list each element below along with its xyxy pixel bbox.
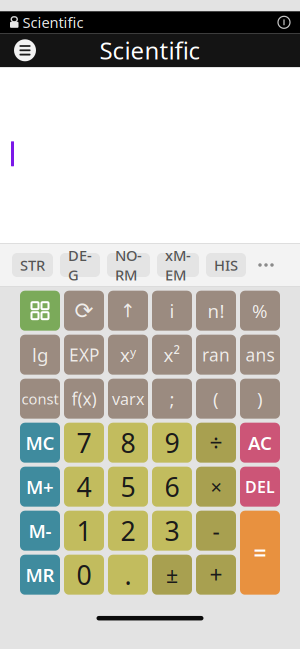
- staticText: 3: [164, 513, 179, 548]
- button[interactable]: -: [196, 511, 236, 551]
- staticText: 8: [120, 425, 135, 460]
- staticText: lg: [32, 342, 48, 367]
- button[interactable]: ±: [152, 555, 192, 595]
- button[interactable]: 6: [152, 467, 192, 507]
- button[interactable]: n!: [196, 291, 236, 331]
- staticText: 4: [76, 469, 91, 504]
- staticText: 9: [164, 425, 179, 460]
- button[interactable]: f(x): [64, 379, 104, 419]
- button[interactable]: 2: [108, 511, 148, 551]
- staticText: M-: [28, 518, 51, 543]
- button[interactable]: =: [240, 511, 280, 595]
- button[interactable]: ran: [196, 335, 236, 375]
- staticText: DEL: [245, 476, 275, 497]
- button[interactable]: NORM: [107, 253, 150, 277]
- staticText: f(x): [71, 387, 96, 410]
- staticText: 5: [120, 469, 135, 504]
- button[interactable]: Swap: [64, 291, 104, 331]
- staticText: %: [252, 298, 268, 323]
- staticText: (: [213, 386, 219, 411]
- button[interactable]: MC: [20, 423, 60, 463]
- staticText: EXP: [69, 343, 99, 366]
- button[interactable]: Menu: [14, 39, 36, 61]
- staticText: xʸ: [120, 342, 136, 367]
- button[interactable]: xʸ: [108, 335, 148, 375]
- button[interactable]: ↑: [108, 291, 148, 331]
- button[interactable]: DEG: [60, 253, 100, 277]
- button[interactable]: 7: [64, 423, 104, 463]
- staticText: x²: [163, 342, 180, 367]
- staticText: ;: [169, 386, 174, 411]
- staticText: ↑: [120, 300, 136, 321]
- button[interactable]: STR: [12, 253, 53, 277]
- staticText: xMEM: [165, 245, 191, 284]
- staticText: .: [124, 557, 131, 592]
- staticText: ran: [202, 343, 230, 366]
- staticText: ±: [166, 560, 178, 589]
- button[interactable]: More options: [253, 253, 279, 277]
- button[interactable]: i: [152, 291, 192, 331]
- button[interactable]: EXP: [64, 335, 104, 375]
- staticText: STR: [20, 255, 45, 275]
- button[interactable]: 8: [108, 423, 148, 463]
- staticText: Scientific: [22, 13, 83, 32]
- button[interactable]: DEL: [240, 467, 280, 507]
- staticText: const: [21, 389, 58, 408]
- button[interactable]: ans: [240, 335, 280, 375]
- staticText: AC: [248, 430, 272, 455]
- button[interactable]: Keypad layout: [20, 291, 60, 331]
- staticText: 2: [120, 513, 135, 548]
- staticText: ÷: [209, 428, 222, 458]
- button[interactable]: 1: [64, 511, 104, 551]
- button[interactable]: ×: [196, 467, 236, 507]
- button[interactable]: xMEM: [157, 253, 199, 277]
- staticText: 0: [76, 557, 91, 592]
- button[interactable]: .: [108, 555, 148, 595]
- staticText: varx: [112, 388, 144, 409]
- button[interactable]: 5: [108, 467, 148, 507]
- staticText: ⟳: [74, 298, 93, 323]
- staticText: 1: [76, 513, 91, 548]
- button[interactable]: lg: [20, 335, 60, 375]
- button[interactable]: ): [240, 379, 280, 419]
- staticText: Scientific: [99, 34, 200, 66]
- staticText: ×: [210, 473, 221, 500]
- button[interactable]: 9: [152, 423, 192, 463]
- staticText: ans: [245, 343, 274, 366]
- button[interactable]: ;: [152, 379, 192, 419]
- button[interactable]: MR: [20, 555, 60, 595]
- button[interactable]: (: [196, 379, 236, 419]
- button[interactable]: 3: [152, 511, 192, 551]
- staticText: =: [253, 538, 266, 568]
- button[interactable]: M+: [20, 467, 60, 507]
- staticText: 7: [76, 425, 91, 460]
- staticText: i: [169, 298, 174, 323]
- staticText: NORM: [115, 245, 142, 284]
- staticText: MR: [25, 562, 54, 587]
- staticText: ): [257, 386, 263, 411]
- staticText: DEG: [68, 245, 92, 284]
- staticText: -: [212, 516, 219, 546]
- button[interactable]: AC: [240, 423, 280, 463]
- button[interactable]: M-: [20, 511, 60, 551]
- staticText: M+: [26, 474, 54, 499]
- staticText: +: [209, 560, 222, 590]
- button[interactable]: varx: [108, 379, 148, 419]
- staticText: MC: [25, 430, 54, 455]
- staticText: 6: [164, 469, 179, 504]
- staticText: n!: [207, 298, 224, 323]
- button[interactable]: const: [20, 379, 60, 419]
- button[interactable]: +: [196, 555, 236, 595]
- button[interactable]: ÷: [196, 423, 236, 463]
- button[interactable]: %: [240, 291, 280, 331]
- staticText: HIS: [214, 255, 238, 275]
- button[interactable]: x²: [152, 335, 192, 375]
- button[interactable]: HIS: [206, 253, 246, 277]
- button[interactable]: 0: [64, 555, 104, 595]
- button[interactable]: Page information: [278, 16, 290, 28]
- button[interactable]: 4: [64, 467, 104, 507]
